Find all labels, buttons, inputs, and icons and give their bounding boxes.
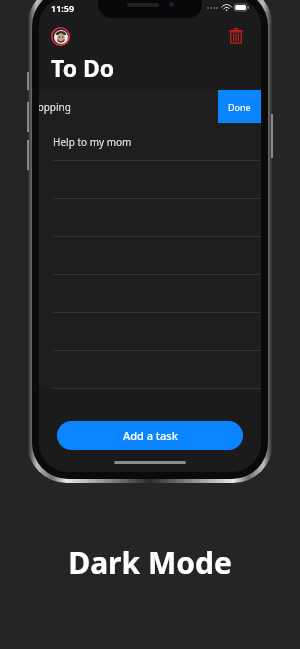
staticText: To Do [51, 52, 115, 83]
staticText: Shopping [39, 100, 71, 114]
button[interactable] [39, 351, 261, 389]
staticText: Dark Mode [0, 542, 300, 583]
button[interactable] [39, 313, 261, 351]
button[interactable]: Add a task [57, 421, 243, 450]
button[interactable] [39, 199, 261, 237]
staticText: Done [228, 101, 251, 113]
button[interactable]: Help to my mom [39, 123, 261, 161]
staticText: 11:59 [51, 2, 75, 14]
button[interactable]: Profile [51, 27, 70, 46]
button[interactable] [39, 237, 261, 275]
button[interactable]: Done [218, 90, 261, 123]
staticText: Add a task [123, 428, 178, 443]
button[interactable]: Shopping [39, 90, 194, 123]
staticText: Help to my mom [53, 135, 132, 149]
button[interactable]: Delete all tasks [223, 23, 249, 49]
button[interactable] [39, 275, 261, 313]
button[interactable] [39, 161, 261, 199]
